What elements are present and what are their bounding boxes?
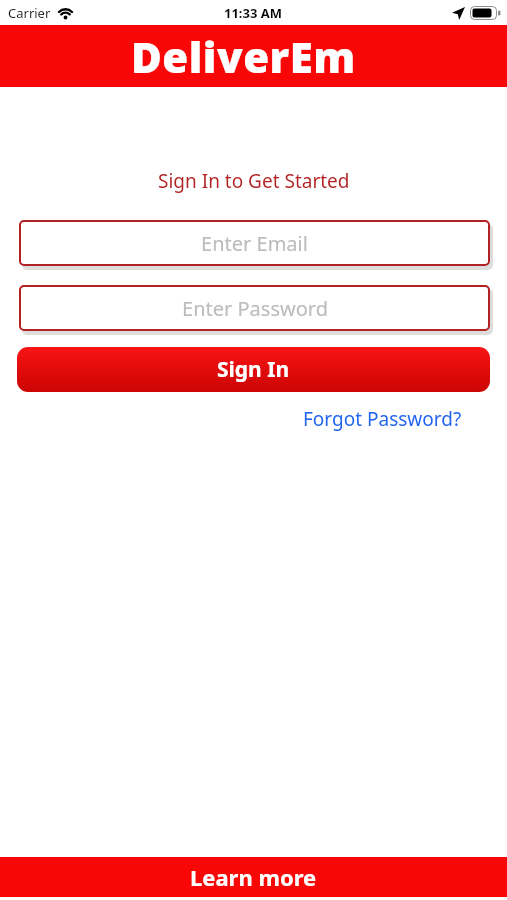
staticText: Sign In	[217, 355, 290, 384]
staticText: 11:33 AM	[224, 4, 283, 22]
staticText: Enter Password	[182, 295, 328, 322]
button[interactable]: Enter Email	[19, 220, 490, 266]
button[interactable]: Enter Password	[19, 285, 490, 331]
button[interactable]: Forgot Password?	[303, 406, 462, 432]
staticText: Sign In to Get Started	[158, 168, 350, 194]
staticText: Enter Email	[201, 230, 308, 257]
staticText: Carrier	[8, 4, 51, 22]
staticText: DeliverEm	[131, 28, 356, 85]
button[interactable]: Sign In	[17, 347, 490, 392]
button[interactable]: Learn more	[0, 857, 507, 897]
staticText: Learn more	[190, 862, 317, 892]
